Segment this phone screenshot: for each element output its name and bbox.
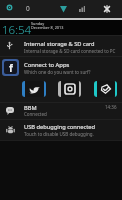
button[interactable]: Facebook: [2, 59, 19, 76]
button[interactable]: BBM: [0, 103, 122, 119]
staticText: Internal storage & SD card: [24, 40, 95, 48]
button[interactable]: Evernote: [94, 81, 117, 97]
button[interactable]: Internal storage & SD card: [0, 36, 122, 56]
button[interactable]: Twitter: [22, 81, 46, 97]
staticText: 0: [26, 4, 30, 13]
other: Sync: [7, 5, 12, 10]
button[interactable]: USB debugging connected: [0, 120, 122, 140]
staticText: Sunday: [31, 21, 45, 26]
staticText: Which one do you want to surf?: [24, 69, 91, 75]
staticText: 14:36: [105, 104, 117, 110]
staticText: December 8, 2013: [31, 25, 64, 30]
button[interactable]: Facebook: [0, 57, 122, 102]
staticText: BBM: [24, 104, 37, 112]
staticText: Touch to disable USB debugging.: [24, 131, 94, 137]
other: Clear all notifications: [103, 5, 111, 13]
button[interactable]: Instagram: [58, 81, 81, 97]
staticText: Internal storage & SD card connected to …: [24, 48, 116, 54]
staticText: Connect to Apps: [24, 61, 70, 69]
staticText: Connected: [24, 111, 47, 117]
staticText: f: [9, 61, 13, 74]
staticText: USB debugging connected: [24, 123, 96, 131]
staticText: 16:54: [2, 22, 32, 37]
